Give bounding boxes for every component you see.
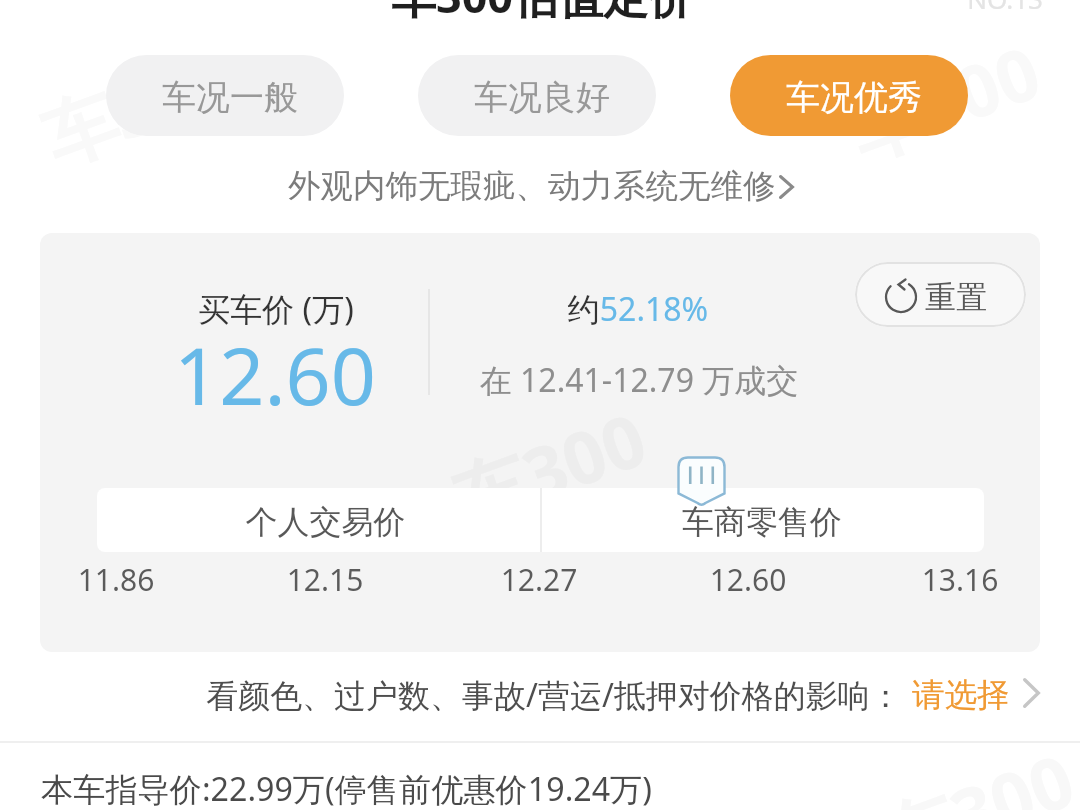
button[interactable]: Reset (855, 262, 1026, 327)
staticText: 重置 (925, 278, 987, 317)
button[interactable]: 车况良好 (418, 55, 656, 136)
staticText: 车况一般 (162, 76, 298, 119)
staticText: NO.13 (955, 0, 1055, 16)
staticText: 车况良好 (474, 76, 610, 119)
button[interactable]: 车况优秀 (730, 55, 968, 136)
staticText: 买车价 (万) (156, 287, 396, 331)
staticText: 11.86 (56, 559, 176, 600)
staticText: 12.60 (135, 321, 415, 429)
button[interactable]: 外观内饰无瑕疵、动力系统无维修 (270, 160, 810, 212)
staticText: 本车指导价:22.99万(停售前优惠价19.24万) (41, 767, 652, 810)
other: Reset (879, 275, 923, 319)
staticText: 车300 (29, 26, 247, 185)
staticText: 车300 (835, 21, 1053, 180)
button[interactable]: 看颜色、过户数、事故/营运/抵押对价格的影响： (180, 664, 1060, 726)
staticText: 约52.18% (458, 287, 818, 331)
staticText: 车况优秀 (786, 76, 922, 119)
staticText: 看颜色、过户数、事故/营运/抵押对价格的影响： (206, 673, 902, 717)
staticText: 车商零售价 (540, 502, 984, 542)
staticText: 个人交易价 (104, 502, 547, 542)
button[interactable]: 个人交易价 (97, 488, 540, 552)
staticText: 12.15 (265, 559, 385, 600)
staticText: 13.16 (900, 559, 1020, 600)
staticText: 车300 (869, 729, 1080, 810)
staticText: 12.27 (479, 559, 599, 600)
button[interactable]: 车商零售价 (540, 488, 984, 552)
staticText: 车300估值定价 (242, 0, 842, 26)
staticText: 车300 (441, 388, 659, 547)
staticText: 请选择 (912, 675, 1010, 716)
staticText: 在 12.41-12.79 万成交 (419, 358, 859, 402)
staticText: 外观内饰无瑕疵、动力系统无维修 (288, 166, 776, 207)
button[interactable]: 车况一般 (106, 55, 344, 136)
staticText: 12.60 (688, 559, 808, 600)
